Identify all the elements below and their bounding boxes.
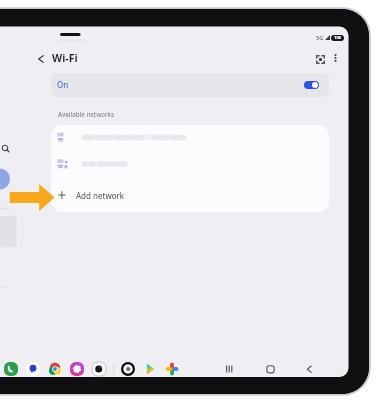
button[interactable]: Add network (51, 178, 329, 212)
button[interactable]: Back (302, 362, 316, 376)
button[interactable]: Home (263, 362, 277, 376)
button[interactable]: On (51, 73, 329, 97)
button[interactable]: App 5 (88, 358, 110, 380)
staticText: Wi-Fi (52, 51, 78, 65)
button[interactable] (51, 125, 329, 150)
button[interactable]: Scan QR code (311, 50, 329, 68)
button[interactable]: Recents (222, 362, 236, 376)
button[interactable]: App 1 (0, 358, 22, 380)
button[interactable]: App 3 (44, 358, 66, 380)
staticText: 5G (316, 34, 324, 41)
button[interactable]: App 7 (139, 358, 161, 380)
button[interactable]: Back (34, 52, 47, 65)
button[interactable] (51, 150, 329, 178)
staticText: On (57, 79, 69, 90)
staticText: Add network (76, 190, 125, 201)
button[interactable]: App 2 (22, 358, 44, 380)
staticText: 100 (334, 35, 342, 41)
button[interactable]: More options (328, 51, 342, 65)
button[interactable]: App 4 (66, 358, 88, 380)
staticText: Available networks (58, 110, 115, 118)
button[interactable]: App 6 (117, 358, 139, 380)
button[interactable]: App 8 (161, 358, 183, 380)
